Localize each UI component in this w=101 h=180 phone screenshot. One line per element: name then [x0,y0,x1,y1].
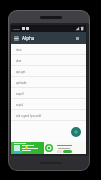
button[interactable] [71,127,81,137]
staticText: aspell [16,92,24,96]
button[interactable]: acpid [11,99,86,110]
button[interactable]: aloo [11,44,86,55]
staticText: ask a geek (you ask) [16,114,42,118]
staticText: apt-get [16,70,26,74]
button[interactable] [11,142,86,154]
button[interactable]: aspell [11,88,86,99]
staticText: acpid [16,103,23,107]
button[interactable]: apt-get [11,66,86,77]
staticText: aloo [16,48,22,52]
button[interactable]: ask a geek (you ask) [11,110,86,121]
button[interactable]: aloe [11,55,86,66]
button[interactable] [63,150,72,153]
staticText: aloe [16,59,22,63]
staticText: 15:20 [13,27,20,30]
button[interactable]: Alpha [11,32,86,44]
button[interactable]: aptitude [11,77,86,88]
staticText: Alpha [22,35,35,41]
staticText: aptitude [16,81,27,85]
